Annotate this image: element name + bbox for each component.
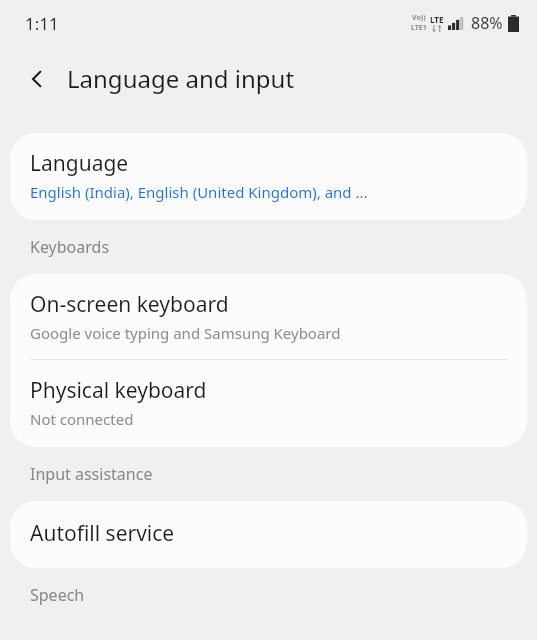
- staticText: On-screen keyboard: [30, 290, 229, 319]
- staticText: LTE1: [411, 23, 427, 33]
- staticText: Vo)): [412, 13, 426, 23]
- staticText: Language and input: [67, 62, 295, 95]
- button[interactable]: Autofill service: [10, 501, 527, 568]
- staticText: Physical keyboard: [30, 376, 207, 405]
- staticText: Google voice typing and Samsung Keyboard: [30, 323, 341, 343]
- button[interactable]: Back: [14, 56, 60, 102]
- staticText: 88%: [471, 12, 503, 34]
- button[interactable]: Language: [10, 133, 527, 220]
- staticText: Keyboards: [30, 236, 537, 258]
- button[interactable]: Physical keyboard: [10, 360, 527, 447]
- staticText: Speech: [30, 584, 537, 606]
- staticText: 1:11: [25, 12, 59, 35]
- staticText: Autofill service: [30, 519, 175, 548]
- staticText: LTE: [430, 14, 444, 25]
- staticText: Language: [30, 149, 129, 178]
- staticText: English (India), English (United Kingdom…: [30, 182, 368, 202]
- staticText: Input assistance: [30, 463, 537, 485]
- staticText: Not connected: [30, 409, 134, 429]
- button[interactable]: On-screen keyboard: [10, 274, 527, 359]
